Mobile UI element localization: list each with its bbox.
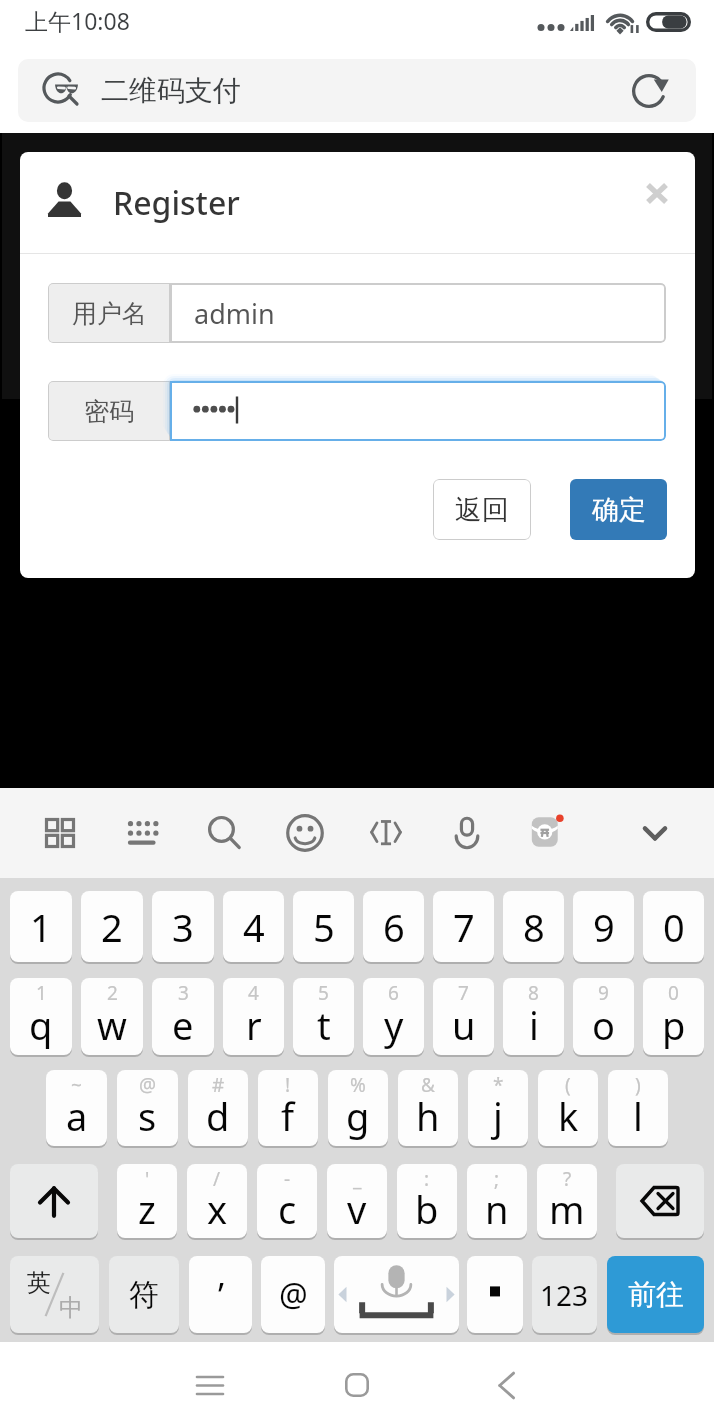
button[interactable]: @ (261, 1256, 325, 1333)
button[interactable]: Cursor (351, 798, 421, 868)
button[interactable]: Keyboard layout (108, 798, 178, 868)
staticText: _ (353, 1166, 362, 1192)
button[interactable]: Backspace (616, 1164, 704, 1238)
button[interactable]: 9 (573, 978, 634, 1055)
staticText: 返回 (455, 493, 509, 527)
button[interactable]: _ (327, 1164, 387, 1238)
button[interactable]: ; (467, 1164, 527, 1238)
staticText: 5 (313, 901, 335, 953)
button[interactable]: / (187, 1164, 247, 1238)
button[interactable]: 7 (433, 891, 494, 962)
staticText: ? (563, 1166, 572, 1192)
button[interactable]: 8 (503, 891, 564, 962)
button[interactable]: ~ (46, 1070, 107, 1146)
button[interactable]: 4 (223, 978, 284, 1055)
button[interactable]: 4 (223, 891, 284, 962)
staticText: 5 (318, 980, 329, 1006)
staticText: * (493, 1072, 504, 1098)
button[interactable]: 3 (152, 891, 214, 962)
button[interactable]: Shift (10, 1164, 98, 1238)
button[interactable] (170, 381, 666, 441)
staticText: ) (635, 1072, 641, 1098)
button[interactable]: ’ (189, 1256, 252, 1333)
button[interactable]: Refresh (628, 70, 670, 112)
staticText: 6 (388, 980, 399, 1006)
button[interactable]: 1 (10, 891, 72, 962)
button[interactable]: % (328, 1070, 388, 1146)
button[interactable]: Emoji (270, 798, 340, 868)
staticText: 9 (598, 980, 609, 1006)
button[interactable]: 1 (10, 978, 72, 1055)
button[interactable]: 6 (363, 978, 424, 1055)
button[interactable]: * (468, 1070, 528, 1146)
button[interactable]: 2 (81, 978, 143, 1055)
staticText: v (347, 1183, 367, 1235)
button[interactable]: 3 (152, 978, 214, 1055)
button[interactable]: Hide keyboard (620, 798, 690, 868)
button[interactable]: Language (513, 798, 583, 868)
button[interactable]: 123 (532, 1256, 597, 1333)
button[interactable]: Go (607, 1256, 704, 1333)
staticText: 1 (30, 901, 52, 953)
button[interactable]: - (257, 1164, 317, 1238)
button[interactable]: Switch language (10, 1256, 99, 1333)
staticText: t (317, 999, 331, 1051)
button[interactable]: Apps (25, 798, 95, 868)
staticText: # (212, 1072, 225, 1098)
button[interactable]: 确定 (570, 479, 667, 540)
staticText: ! (285, 1072, 291, 1098)
staticText: 英 (27, 1268, 51, 1298)
button[interactable]: @ (117, 1070, 178, 1146)
button[interactable]: Search (189, 798, 259, 868)
button[interactable]: Home (317, 1345, 397, 1425)
button[interactable]: Recents (170, 1345, 250, 1425)
button[interactable]: 7 (433, 978, 494, 1055)
staticText: 1 (36, 980, 47, 1006)
button[interactable]: ? (537, 1164, 597, 1238)
staticText: k (558, 1090, 579, 1142)
button[interactable]: 0 (643, 891, 704, 962)
button[interactable]: : (397, 1164, 457, 1238)
staticText: u (452, 999, 476, 1051)
button[interactable]: 二维码支付 (18, 59, 696, 122)
staticText: ; (494, 1166, 500, 1192)
button[interactable]: 9 (573, 891, 634, 962)
staticText: 用户名 (72, 298, 147, 329)
staticText: 0 (668, 980, 679, 1006)
button[interactable]: Space (334, 1256, 459, 1333)
button[interactable]: Close (636, 173, 678, 215)
staticText: ’ (218, 1272, 224, 1318)
staticText: 8 (523, 901, 545, 953)
staticText: ~ (71, 1072, 82, 1098)
staticText: 4 (248, 980, 259, 1006)
button[interactable]: ! (258, 1070, 318, 1146)
button[interactable]: Back (466, 1345, 546, 1425)
button[interactable]: ) (608, 1070, 668, 1146)
button[interactable]: 符 (109, 1256, 179, 1333)
button[interactable]: admin (170, 283, 666, 343)
button[interactable]: Period (467, 1256, 523, 1333)
button[interactable]: ' (117, 1164, 177, 1238)
staticText: 3 (172, 901, 194, 953)
staticText: 7 (453, 901, 475, 953)
button[interactable]: 5 (293, 891, 354, 962)
staticText: m (549, 1183, 585, 1235)
staticText: i (529, 999, 539, 1051)
button[interactable]: 8 (503, 978, 564, 1055)
button[interactable]: 6 (363, 891, 424, 962)
button[interactable]: 2 (81, 891, 143, 962)
staticText: 7 (458, 980, 469, 1006)
button[interactable]: & (398, 1070, 458, 1146)
button[interactable]: Voice input (432, 798, 502, 868)
button[interactable]: # (188, 1070, 248, 1146)
staticText: p (662, 999, 686, 1051)
staticText: 2 (101, 901, 123, 953)
staticText: : (424, 1166, 430, 1192)
button[interactable]: ( (538, 1070, 598, 1146)
staticText: d (206, 1090, 230, 1142)
button[interactable]: 0 (643, 978, 704, 1055)
staticText: % (350, 1072, 366, 1098)
button[interactable]: 返回 (433, 479, 531, 540)
staticText: r (246, 999, 262, 1051)
button[interactable]: 5 (293, 978, 354, 1055)
